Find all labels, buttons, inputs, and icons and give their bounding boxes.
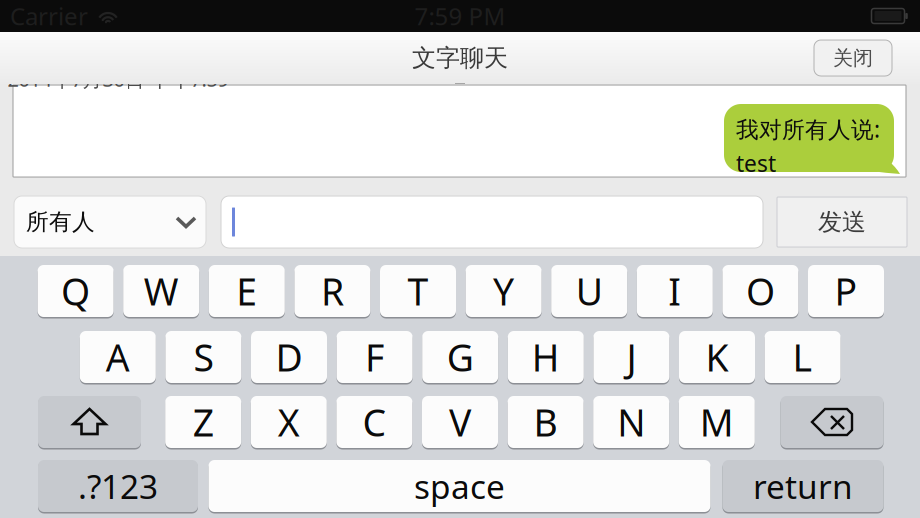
button[interactable]: C (336, 394, 412, 449)
staticText: return (753, 464, 853, 508)
button[interactable]: W (123, 263, 199, 318)
staticText: Q (61, 266, 90, 316)
staticText: 关闭 (833, 46, 873, 70)
staticText: 发送 (818, 207, 866, 237)
staticText: test (736, 148, 776, 178)
button[interactable]: 关闭 (814, 40, 892, 76)
staticText: E (236, 266, 257, 316)
staticText: X (278, 397, 300, 447)
staticText: Carrier (10, 0, 88, 32)
staticText: Y (493, 266, 514, 316)
staticText: H (532, 332, 560, 382)
staticText: 我对所有人说: (736, 114, 880, 144)
button[interactable]: .?123 (38, 458, 198, 513)
button[interactable]: Q (38, 263, 114, 318)
staticText: N (617, 397, 645, 447)
button[interactable]: Z (165, 394, 241, 449)
staticText: Z (193, 397, 214, 447)
staticText: 所有人 (26, 208, 95, 236)
staticText: U (576, 266, 603, 316)
staticText: D (275, 332, 302, 382)
staticText: 2014年7月30日 下午7:59 (7, 66, 228, 92)
staticText: space (414, 464, 505, 508)
button[interactable]: 所有人 (14, 196, 206, 248)
staticText: B (534, 397, 558, 447)
button[interactable]: Y (466, 263, 542, 318)
staticText: C (362, 397, 386, 447)
staticText: G (447, 332, 474, 382)
button[interactable]: Shift (38, 394, 141, 449)
button[interactable]: T (380, 263, 456, 318)
button[interactable]: U (551, 263, 627, 318)
button[interactable]: G (422, 329, 498, 384)
staticText: K (705, 332, 728, 382)
staticText: O (746, 266, 775, 316)
button[interactable]: H (508, 329, 584, 384)
staticText: A (106, 332, 130, 382)
staticText: 文字聊天 (412, 43, 508, 73)
button[interactable]: I (637, 263, 713, 318)
staticText: F (365, 332, 384, 382)
button[interactable]: A (80, 329, 156, 384)
staticText: T (407, 266, 428, 316)
button[interactable]: space (208, 458, 710, 513)
button[interactable]: K (679, 329, 755, 384)
button[interactable]: F (337, 329, 413, 384)
button[interactable]: N (593, 394, 669, 449)
button[interactable]: X (251, 394, 327, 449)
button[interactable]: B (508, 394, 584, 449)
staticText: .?123 (78, 464, 158, 508)
button[interactable]: V (422, 394, 498, 449)
button[interactable]: E (209, 263, 285, 318)
staticText: 7:59 PM (414, 0, 505, 32)
button[interactable]: S (165, 329, 241, 384)
button[interactable]: R (294, 263, 370, 318)
staticText: R (321, 266, 344, 316)
button[interactable]: O (722, 263, 798, 318)
button[interactable]: D (251, 329, 327, 384)
button[interactable]: L (765, 329, 841, 384)
button[interactable]: Delete (780, 394, 883, 449)
staticText: J (626, 332, 636, 382)
staticText: S (193, 332, 213, 382)
staticText: L (793, 332, 813, 382)
button[interactable]: M (679, 394, 755, 449)
staticText: M (700, 397, 734, 447)
button[interactable]: P (808, 263, 884, 318)
button[interactable]: return (722, 458, 883, 513)
staticText: V (449, 397, 471, 447)
button[interactable]: 发送 (777, 197, 907, 247)
staticText: P (834, 266, 857, 316)
staticText: W (144, 266, 179, 316)
staticText: I (668, 266, 681, 316)
button[interactable]: J (593, 329, 669, 384)
